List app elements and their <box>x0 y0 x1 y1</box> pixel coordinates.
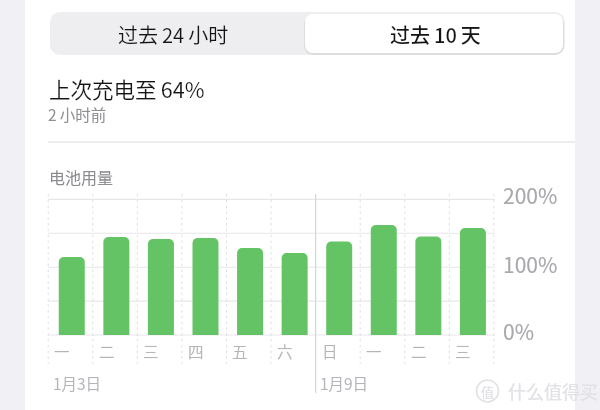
staticText: 四 <box>188 340 204 362</box>
staticText: 0% <box>503 316 534 346</box>
staticText: 过去 10 天 <box>390 20 481 49</box>
staticText: 值 <box>481 382 495 401</box>
staticText: 五 <box>232 340 248 362</box>
staticText: 三 <box>143 340 159 362</box>
button[interactable] <box>50 12 308 55</box>
staticText: 什么值得买 <box>508 378 598 404</box>
button[interactable] <box>307 12 565 55</box>
staticText: 二 <box>99 340 115 362</box>
staticText: 六 <box>277 340 293 362</box>
staticText: 过去 24 小时 <box>118 20 229 49</box>
staticText: 一 <box>54 340 70 362</box>
staticText: 电池用量 <box>49 165 114 188</box>
staticText: 一 <box>366 340 382 362</box>
staticText: 100% <box>503 249 558 279</box>
staticText: 1月3日 <box>53 372 102 394</box>
staticText: 二 <box>411 340 427 362</box>
staticText: 2 小时前 <box>48 103 107 125</box>
staticText: 1月9日 <box>320 372 369 394</box>
staticText: 日 <box>322 340 338 362</box>
staticText: 三 <box>455 340 471 362</box>
staticText: 200% <box>503 180 558 210</box>
staticText: 上次充电至 64% <box>49 73 205 104</box>
